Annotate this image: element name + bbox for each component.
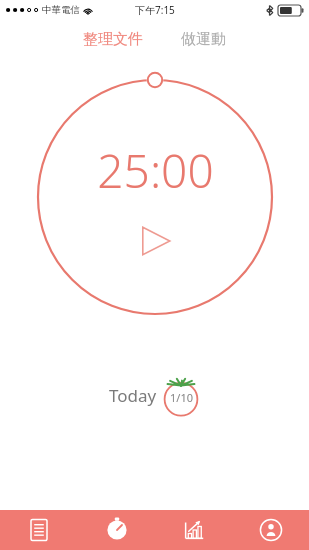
- button[interactable]: 做運動: [171, 26, 236, 53]
- button[interactable]: Profile: [232, 510, 309, 550]
- button[interactable]: Statistics: [155, 510, 232, 550]
- staticText: 1/10: [170, 390, 193, 405]
- button[interactable]: Timer: [78, 510, 155, 550]
- staticText: 做運動: [181, 30, 226, 49]
- staticText: 25:00: [97, 139, 214, 202]
- button[interactable]: 整理文件: [73, 26, 153, 53]
- button[interactable]: Today: [0, 374, 309, 416]
- staticText: 中華電信: [42, 4, 80, 16]
- button[interactable]: Start timer: [31, 73, 279, 321]
- staticText: 下午7:15: [135, 3, 175, 17]
- staticText: Today: [109, 384, 157, 407]
- button[interactable]: Tasks: [0, 510, 78, 550]
- staticText: 整理文件: [83, 30, 143, 49]
